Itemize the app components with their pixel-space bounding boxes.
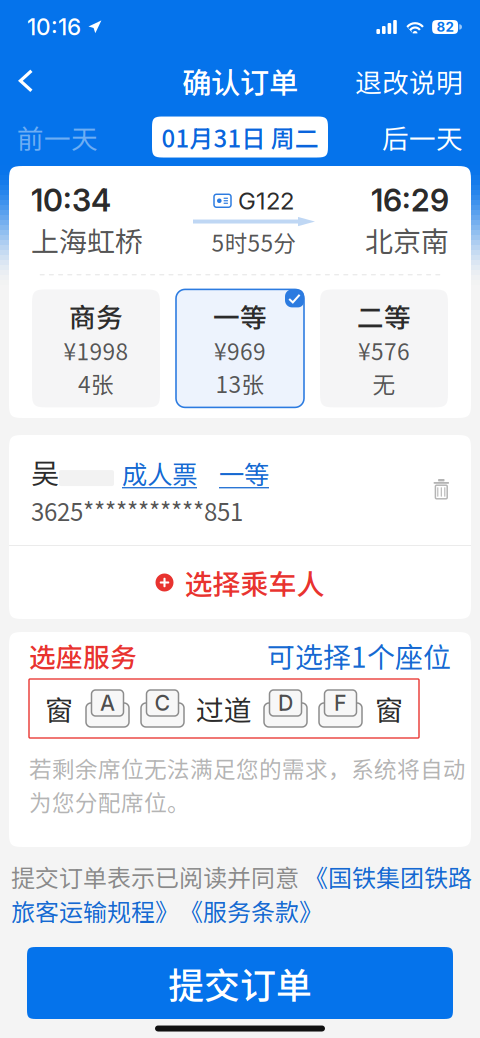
staticText: 确认订单 [182,66,298,96]
staticText: ¥969 [214,339,266,362]
staticText: ¥576 [358,339,410,362]
staticText: 提交订单 [168,964,312,1002]
staticText: 旅客运输规程》《服务条款》 [11,898,323,923]
staticText: 13张 [215,371,264,395]
staticText: 窗 [375,694,403,723]
staticText: 选择乘车人 [184,568,324,597]
staticText: 无 [372,371,395,395]
staticText: 前一天 [17,123,98,151]
staticText: 过道 [196,694,252,723]
staticText: 退改说明 [355,67,463,95]
button[interactable]: F [319,690,362,727]
staticText: 提交订单表示已阅读并同意 [11,864,304,889]
staticText: C [154,692,170,714]
staticText: 商务 [69,302,123,330]
staticText: G122 [238,189,294,213]
button[interactable]: 二等 [320,289,448,407]
staticText: ¥1998 [63,339,128,362]
staticText: 窗 [45,694,73,723]
button[interactable]: 01月31日 周二 [152,116,328,157]
staticText: 一等 [219,460,269,486]
staticText: 4张 [78,371,114,395]
button[interactable]: 商务 [32,289,160,407]
staticText: 上海虹桥 [31,225,143,254]
button[interactable]: 可选择1个座位 [267,641,451,670]
button[interactable]: 选择乘车人 [9,546,471,619]
button[interactable]: D [264,690,307,727]
button[interactable]: 前一天 [0,108,98,166]
staticText: 后一天 [382,123,463,151]
staticText: 若剩余席位无法满足您的需求，系统将自动 [29,756,466,780]
staticText: 82 [437,20,454,34]
button[interactable]: C [141,690,184,727]
button[interactable]: 提交订单 [27,947,453,1019]
staticText: 为您分配席位。 [29,790,190,813]
staticText: 北京南 [365,225,449,254]
staticText: D [278,692,293,714]
staticText: 01月31日 周二 [161,124,318,149]
staticText: 成人票 [122,460,197,486]
staticText: 可选择1个座位 [267,641,451,670]
staticText: 《国铁集团铁路 [304,864,472,889]
staticText: 10:34 [31,186,111,215]
staticText: A [100,692,115,714]
staticText: 5时55分 [211,230,296,254]
staticText: 16:29 [371,186,449,215]
staticText: 3625***********851 [31,498,243,523]
button[interactable]: 返回 [0,54,52,108]
staticText: 吴 [31,457,59,486]
staticText: 一等 [213,302,267,330]
staticText: 选座服务 [29,642,137,669]
button[interactable]: 吴 [9,435,471,545]
staticText: F [334,692,347,714]
button[interactable]: 一等 [176,289,304,407]
button[interactable]: 退改说明 [355,54,480,108]
staticText: 10:16 [27,15,81,38]
button[interactable]: 后一天 [382,108,480,166]
staticText: 二等 [357,302,411,330]
button[interactable]: A [86,690,129,727]
